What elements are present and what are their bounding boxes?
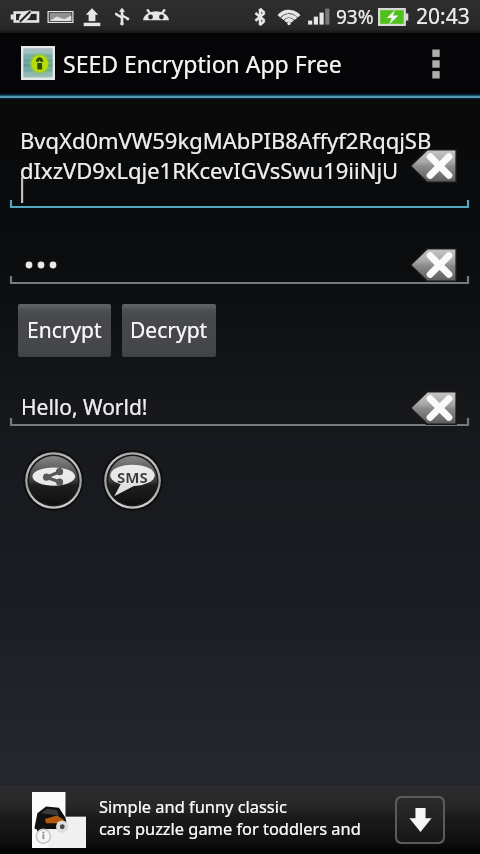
button[interactable]: Clear text xyxy=(410,391,458,425)
button[interactable]: Encrypt xyxy=(18,304,111,357)
button[interactable]: More options xyxy=(418,33,454,93)
button[interactable]: Share xyxy=(23,450,84,511)
staticText: Encrypt xyxy=(27,316,102,345)
staticText: SEED Encryption App Free xyxy=(63,48,342,79)
staticText: Hello, World! xyxy=(21,393,148,422)
staticText: Simple and funny classic xyxy=(99,795,287,817)
staticText: cars puzzle game for toddlers and xyxy=(99,817,361,839)
button[interactable]: Clear text xyxy=(410,248,458,282)
button[interactable]: Simple and funny classic xyxy=(0,786,480,854)
button[interactable]: Decrypt xyxy=(122,304,216,357)
staticText: BvqXd0mVW59kgMAbPIB8Affyf2RqqjSB xyxy=(20,125,432,155)
staticText: Decrypt xyxy=(130,316,208,345)
button[interactable]: Send SMS xyxy=(102,450,163,511)
staticText: 93% xyxy=(336,4,374,30)
button[interactable]: Clear text xyxy=(410,149,458,183)
staticText: dIxzVD9xLqje1RKcevIGVsSwu19iiNjU xyxy=(20,155,399,185)
button[interactable]: Download xyxy=(397,798,443,842)
staticText: 20:43 xyxy=(416,2,470,31)
staticText: SMS xyxy=(117,467,148,487)
